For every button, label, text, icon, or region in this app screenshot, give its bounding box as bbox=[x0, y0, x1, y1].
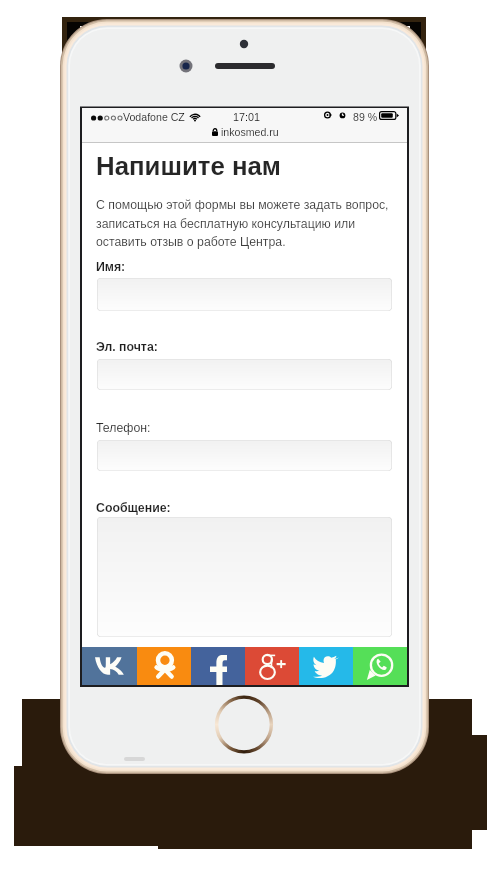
button[interactable] bbox=[97, 517, 392, 637]
staticText: 89 % bbox=[353, 111, 378, 123]
staticText: Напишите нам bbox=[96, 152, 281, 181]
staticText: Vodafone CZ bbox=[123, 111, 185, 123]
button[interactable]: Facebook bbox=[191, 647, 245, 685]
staticText: 17:01 bbox=[233, 111, 261, 123]
staticText: Сообщение: bbox=[96, 501, 171, 515]
button[interactable] bbox=[97, 359, 392, 390]
staticText: Эл. почта: bbox=[96, 340, 158, 354]
staticText: inkosmed.ru bbox=[221, 126, 279, 138]
button[interactable]: WhatsApp bbox=[353, 647, 407, 685]
button[interactable] bbox=[97, 278, 392, 311]
button[interactable]: VKontakte bbox=[82, 647, 137, 685]
staticText: С помощью этой формы вы можете задать во… bbox=[96, 198, 392, 248]
button[interactable]: Google Plus bbox=[245, 647, 299, 685]
button[interactable] bbox=[97, 440, 392, 471]
button[interactable]: Twitter bbox=[299, 647, 353, 685]
staticText: Имя: bbox=[96, 260, 126, 274]
staticText: Телефон: bbox=[96, 421, 151, 435]
button[interactable]: Odnoklassniki bbox=[137, 647, 191, 685]
